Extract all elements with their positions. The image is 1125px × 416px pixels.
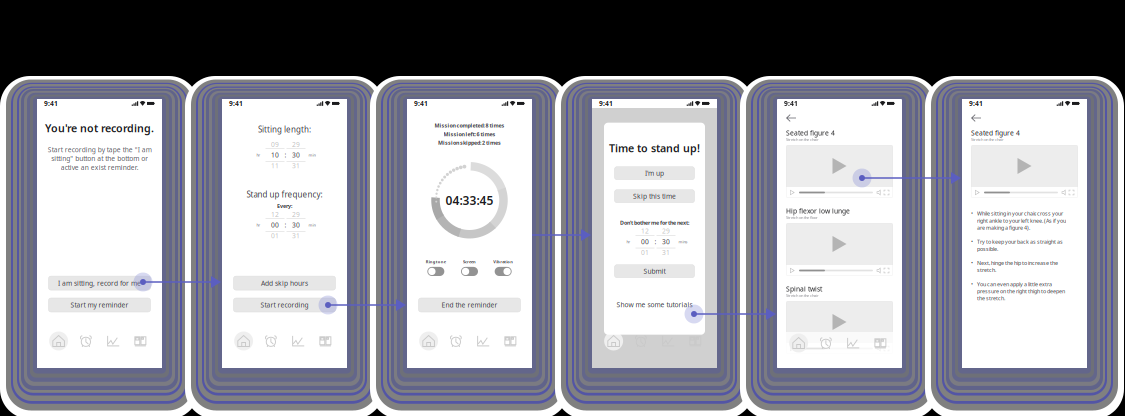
staticText: Sitting length: xyxy=(258,124,311,135)
staticText: Spinal twist xyxy=(786,285,822,293)
button[interactable]: Reminders xyxy=(627,331,654,351)
staticText: Stretch on the chair xyxy=(971,137,1004,142)
staticText: • xyxy=(971,238,973,245)
button[interactable]: Home xyxy=(230,331,257,351)
staticText: 9:41 xyxy=(599,99,613,108)
staticText: Stretch on the floor xyxy=(786,215,818,220)
button[interactable]: Reminders xyxy=(812,333,839,353)
staticText: 10 xyxy=(271,151,279,159)
staticText: 09 xyxy=(271,140,279,149)
staticText: Stand up frequency: xyxy=(246,189,322,200)
staticText: : xyxy=(654,237,656,246)
staticText: hr xyxy=(256,152,260,158)
staticText: 00 xyxy=(271,221,279,229)
staticText: 9:41 xyxy=(784,99,798,108)
staticText: 9:41 xyxy=(414,99,428,108)
staticText: Seated figure 4 xyxy=(971,129,1020,137)
staticText: • xyxy=(971,210,973,217)
staticText: Screen xyxy=(463,259,476,264)
button[interactable]: Skip this time xyxy=(614,190,694,203)
staticText: 9:41 xyxy=(44,99,58,108)
staticText: Every: xyxy=(277,202,292,210)
staticText: 31 xyxy=(292,161,300,170)
button[interactable]: Start my reminder xyxy=(48,298,150,312)
button[interactable]: Library xyxy=(867,333,894,353)
button[interactable]: I'm up xyxy=(614,167,694,180)
staticText: Vibration xyxy=(493,259,513,264)
button[interactable]: I am sitting, record for me xyxy=(48,276,150,290)
staticText: While sitting in your chair, cross your … xyxy=(977,210,1066,231)
staticText: : xyxy=(284,221,286,229)
staticText: Start my reminder xyxy=(70,301,128,309)
staticText: 12 xyxy=(271,210,279,219)
staticText: Hip flexor low lunge xyxy=(786,207,850,215)
staticText: Skip this time xyxy=(633,192,676,201)
staticText: mins xyxy=(678,239,687,244)
button[interactable]: Reminders xyxy=(257,331,284,351)
button[interactable]: Show me some tutorials xyxy=(604,300,705,310)
staticText: Start recording xyxy=(260,301,308,309)
button[interactable]: Reminders xyxy=(72,331,99,351)
staticText: min xyxy=(308,222,315,228)
staticText: Ringtone xyxy=(426,259,446,264)
button[interactable]: Screen xyxy=(461,267,478,276)
button[interactable]: Statistics xyxy=(654,331,682,351)
button[interactable]: Reminders xyxy=(442,331,469,351)
staticText: 31 xyxy=(662,248,670,257)
button[interactable]: Library xyxy=(312,331,339,351)
staticText: Time to stand up! xyxy=(609,141,700,155)
button[interactable]: Home xyxy=(600,331,627,351)
staticText: Next, hinge the hip to increase the stre… xyxy=(977,259,1058,274)
button[interactable]: End the reminder xyxy=(418,298,520,312)
button[interactable]: Home xyxy=(415,331,442,351)
staticText: hr xyxy=(256,222,260,228)
staticText: I am sitting, record for me xyxy=(58,279,141,288)
staticText: End the reminder xyxy=(441,301,497,309)
staticText: min xyxy=(308,152,315,158)
button[interactable]: Home xyxy=(45,331,72,351)
staticText: 01 xyxy=(271,231,279,240)
staticText: Mission skipped: 2 times xyxy=(438,139,501,146)
staticText: Try to keep your back as straight as pos… xyxy=(977,238,1063,252)
staticText: Mission completed: 8 times xyxy=(434,122,504,129)
staticText: You're not recording. xyxy=(45,121,154,135)
button[interactable]: Vibration xyxy=(495,267,512,276)
button[interactable]: Back xyxy=(786,114,796,122)
staticText: Show me some tutorials xyxy=(616,300,692,309)
staticText: Stretch on the chair xyxy=(786,137,819,142)
button[interactable]: Back xyxy=(971,114,981,122)
staticText: Don't bother me for the next: xyxy=(620,219,689,226)
staticText: Stretch on the chair xyxy=(786,293,819,298)
staticText: Submit xyxy=(643,267,665,276)
staticText: 11 xyxy=(271,161,279,170)
staticText: 30 xyxy=(292,151,300,159)
staticText: Add skip hours xyxy=(261,279,308,288)
staticText: 04:33:45 xyxy=(445,192,493,208)
staticText: : xyxy=(284,151,286,159)
button[interactable]: Add skip hours xyxy=(233,276,335,290)
staticText: I'm up xyxy=(645,169,664,178)
staticText: 9:41 xyxy=(969,99,983,108)
button[interactable]: Library xyxy=(127,331,154,351)
button[interactable]: Statistics xyxy=(284,331,312,351)
button[interactable]: Statistics xyxy=(99,331,127,351)
button[interactable]: Library xyxy=(682,331,709,351)
button[interactable]: Statistics xyxy=(469,331,497,351)
button[interactable]: Start recording xyxy=(233,298,335,312)
staticText: 29 xyxy=(662,227,670,235)
staticText: You can even apply a little extra pressu… xyxy=(977,281,1065,302)
staticText: 30 xyxy=(662,237,670,246)
staticText: Mission left: 6 times xyxy=(443,131,495,138)
staticText: 01 xyxy=(641,248,649,257)
button[interactable]: Statistics xyxy=(839,333,867,353)
staticText: • xyxy=(971,281,973,288)
staticText: • xyxy=(971,259,973,266)
button[interactable]: Library xyxy=(497,331,524,351)
staticText: 9:41 xyxy=(229,99,243,108)
staticText: Start recording by tape the "I am sittin… xyxy=(47,145,151,172)
button[interactable]: Ringtone xyxy=(427,267,444,276)
staticText: 29 xyxy=(292,140,300,149)
button[interactable]: Submit xyxy=(614,265,694,278)
button[interactable]: Home xyxy=(785,333,812,353)
staticText: hr xyxy=(626,239,630,244)
